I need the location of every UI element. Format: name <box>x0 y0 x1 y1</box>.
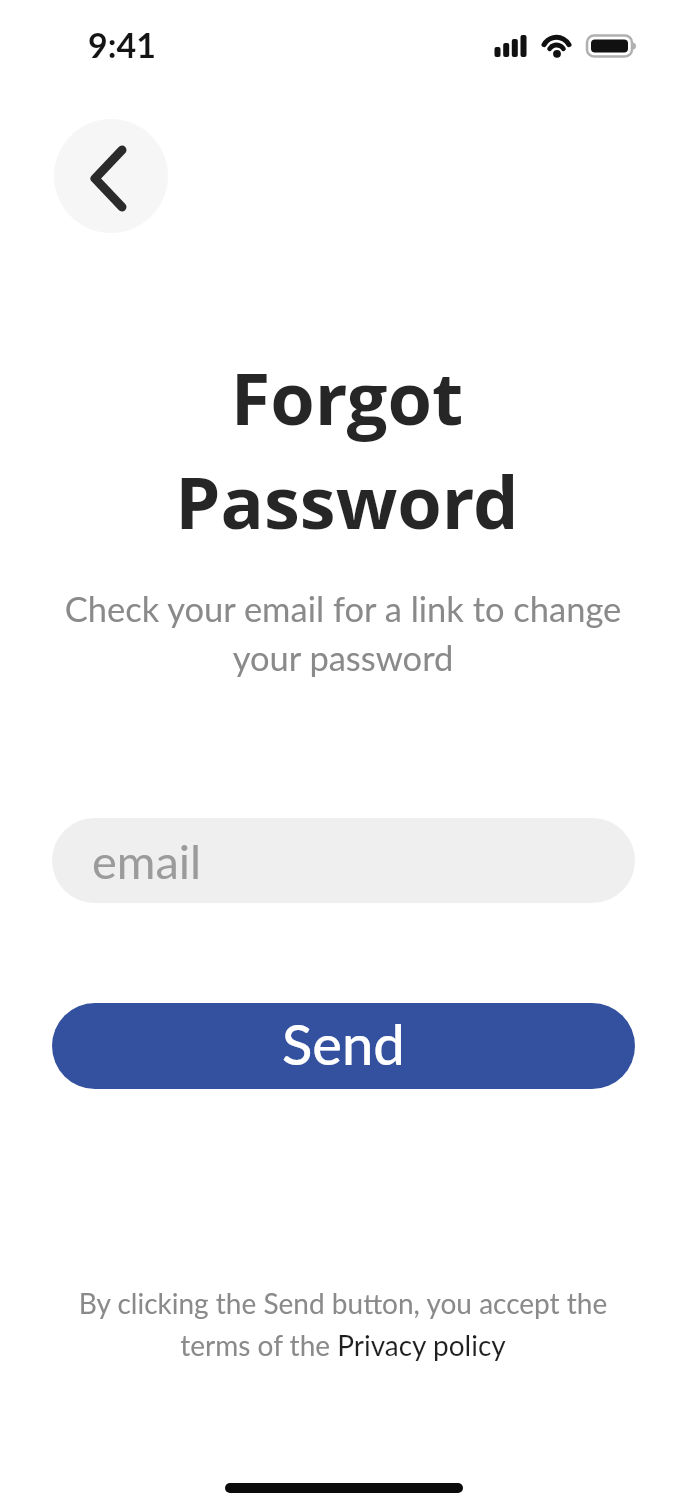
button[interactable]: email <box>52 818 635 903</box>
staticText: Forgot Password <box>4 348 686 550</box>
staticText: Send <box>282 1010 405 1077</box>
button[interactable] <box>54 119 168 233</box>
button[interactable]: Send <box>52 1003 635 1089</box>
staticText: email <box>92 833 202 889</box>
button[interactable]: By clicking the Send button, you accept … <box>0 1286 686 1362</box>
staticText: 9:41 <box>88 24 156 65</box>
staticText: Check your email for a link to change yo… <box>0 588 686 679</box>
